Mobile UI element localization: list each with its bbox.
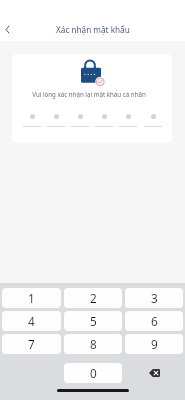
- button[interactable]: [119, 114, 137, 127]
- staticText: 2: [90, 290, 97, 306]
- button[interactable]: [23, 114, 41, 127]
- button[interactable]: 0: [64, 363, 122, 383]
- staticText: 3: [151, 290, 158, 306]
- button[interactable]: 4: [2, 311, 61, 331]
- button[interactable]: Backspace: [125, 363, 183, 383]
- button[interactable]: Back: [0, 18, 18, 40]
- button[interactable]: 3: [125, 288, 183, 308]
- staticText: 0: [90, 365, 97, 381]
- button[interactable]: [95, 114, 113, 127]
- button[interactable]: 7: [2, 334, 61, 354]
- staticText: 7: [28, 336, 35, 352]
- button[interactable]: [47, 114, 65, 127]
- staticText: 1: [28, 290, 35, 306]
- button[interactable]: 2: [64, 288, 122, 308]
- button[interactable]: 9: [125, 334, 183, 354]
- button[interactable]: 1: [2, 288, 61, 308]
- button[interactable]: [71, 114, 89, 127]
- staticText: 9: [151, 336, 158, 352]
- staticText: 6: [151, 313, 158, 329]
- staticText: 4: [28, 313, 35, 329]
- staticText: 8: [90, 336, 97, 352]
- staticText: Vui lòng xác nhận lại mật khẩu cá nhân: [32, 90, 146, 98]
- staticText: 5: [90, 313, 97, 329]
- button[interactable]: 8: [64, 334, 122, 354]
- button[interactable]: [144, 114, 162, 127]
- button[interactable]: 6: [125, 311, 183, 331]
- staticText: Xác nhận mật khẩu: [56, 24, 130, 35]
- button[interactable]: 5: [64, 311, 122, 331]
